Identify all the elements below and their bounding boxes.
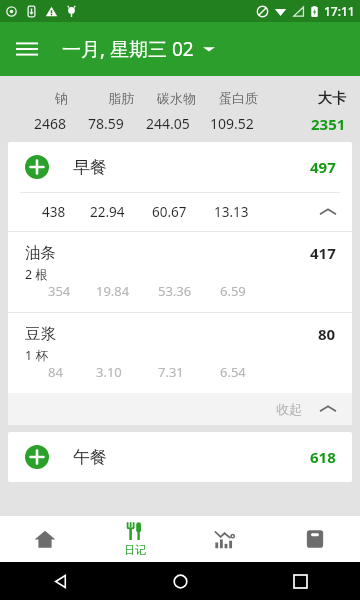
button[interactable]: Add food to 早餐 (25, 155, 49, 179)
staticText: 2351 (311, 114, 346, 134)
button[interactable]: 收起 (8, 393, 352, 425)
staticText: 19.84 (96, 282, 130, 300)
button[interactable]: 豆浆 (8, 313, 352, 393)
staticText: 22.94 (90, 203, 125, 221)
staticText: 收起 (276, 401, 302, 417)
staticText: 244.05 (146, 114, 190, 133)
staticText: 钠 (55, 90, 68, 106)
staticText: 1 杯 (25, 347, 48, 364)
staticText: 354 (48, 282, 71, 300)
button[interactable]: Progress (180, 516, 270, 562)
staticText: 13.13 (214, 203, 249, 221)
staticText: 脂肪 (108, 90, 134, 106)
staticText: 3.10 (96, 363, 122, 381)
button[interactable]: Home (0, 516, 90, 562)
staticText: 油条 (25, 243, 56, 263)
staticText: 2468 (34, 114, 67, 133)
staticText: 早餐 (73, 157, 107, 178)
button[interactable]: 油条 (8, 232, 352, 312)
button[interactable]: Add food to 早餐 (8, 142, 352, 192)
staticText: 438 (42, 203, 66, 221)
button[interactable]: Recents (280, 562, 320, 600)
staticText: 午餐 (73, 447, 107, 468)
staticText: 78.59 (88, 114, 124, 133)
button[interactable]: 一月, 星期三 02 (62, 36, 215, 62)
staticText: 84 (48, 363, 63, 381)
staticText: 碳水物 (157, 90, 196, 106)
staticText: 大卡 (318, 90, 346, 108)
staticText: 一月, 星期三 02 (62, 36, 194, 62)
button[interactable]: Menu (0, 22, 54, 76)
button[interactable]: Weight (270, 516, 360, 562)
staticText: 53.36 (158, 282, 192, 300)
staticText: 60.67 (152, 203, 187, 221)
staticText: 7.31 (158, 363, 184, 381)
staticText: 80 (318, 324, 336, 344)
staticText: 蛋白质 (219, 90, 258, 106)
button[interactable]: Add food to 午餐 (25, 445, 49, 469)
staticText: 6.54 (220, 363, 246, 381)
staticText: 豆浆 (25, 324, 56, 344)
button[interactable]: 日记 (90, 516, 180, 562)
staticText: 109.52 (210, 114, 254, 133)
staticText: 6.59 (220, 282, 246, 300)
button[interactable]: 438 (8, 193, 352, 231)
button[interactable]: Back (40, 562, 80, 600)
staticText: 417 (310, 243, 336, 263)
staticText: 日记 (124, 543, 146, 557)
button[interactable]: Home (160, 562, 200, 600)
staticText: 17:11 (324, 3, 355, 19)
button[interactable]: Add food to 午餐 (8, 432, 352, 482)
staticText: 618 (310, 447, 336, 467)
staticText: 2 根 (25, 266, 48, 283)
staticText: 497 (310, 157, 336, 177)
